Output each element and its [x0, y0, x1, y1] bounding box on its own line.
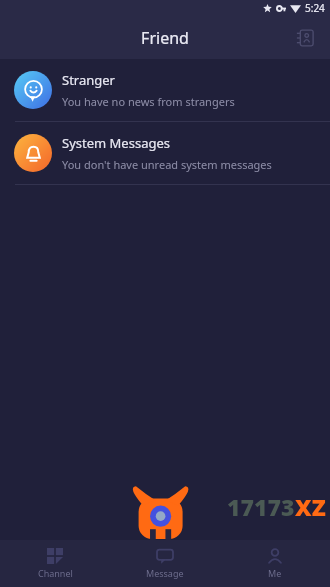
button[interactable]: Stranger	[0, 59, 330, 121]
staticText: Message	[146, 567, 184, 579]
staticText: You have no news from strangers	[62, 94, 235, 109]
staticText: 5:24	[305, 1, 325, 15]
staticText: 17173	[227, 491, 295, 522]
staticText: Channel	[38, 567, 73, 579]
button[interactable]: Contacts	[288, 21, 322, 55]
staticText: Friend	[141, 27, 189, 49]
staticText: XZ	[295, 491, 326, 522]
button[interactable]: System Messages	[0, 122, 330, 184]
button[interactable]: Message	[110, 540, 220, 587]
staticText: You don't have unread system messages	[62, 157, 272, 172]
button[interactable]: Channel	[0, 540, 110, 587]
staticText: Me	[268, 567, 282, 579]
staticText: System Messages	[62, 134, 170, 152]
button[interactable]: Me	[220, 540, 330, 587]
staticText: Stranger	[62, 71, 115, 89]
